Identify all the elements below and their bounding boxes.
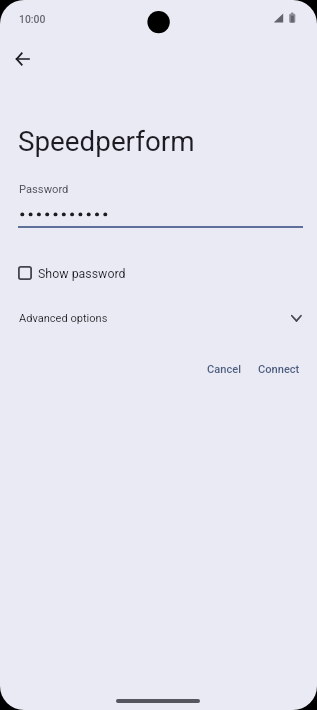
staticText: Show password	[38, 266, 126, 281]
staticText: Speedperform	[18, 125, 195, 158]
button[interactable]: Cancel	[196, 355, 252, 383]
button[interactable]: Connect	[250, 355, 308, 383]
button[interactable]: Back	[4, 41, 40, 77]
button[interactable]: Password	[18, 178, 303, 229]
staticText: Advanced options	[19, 312, 108, 325]
button[interactable]: Show password	[10, 258, 140, 288]
staticText: Password	[19, 183, 69, 196]
staticText: 10:00	[19, 13, 46, 25]
button[interactable]: Advanced options	[0, 305, 317, 333]
staticText: Cancel	[207, 363, 241, 376]
staticText: Connect	[258, 363, 300, 376]
